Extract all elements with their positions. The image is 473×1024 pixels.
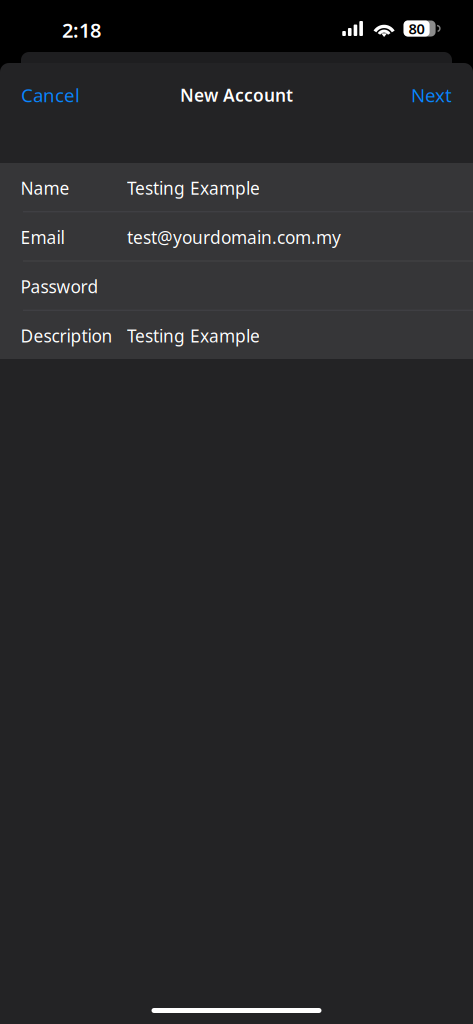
staticText: 80 [409,19,425,38]
staticText: Name [20,177,69,200]
button[interactable]: Email [0,212,473,260]
staticText: Description [20,324,112,347]
button[interactable]: Cancel [0,65,102,119]
button[interactable]: Password [0,261,473,310]
staticText: test@yourdomain.com.my [127,226,341,249]
staticText: Email [20,226,64,249]
button[interactable]: Description [0,311,473,359]
button[interactable]: Name [0,163,473,211]
staticText: Password [20,275,98,298]
staticText: Testing Example [127,177,260,200]
staticText: Next [411,83,452,107]
button[interactable]: Next [389,65,473,119]
staticText: Testing Example [127,324,260,347]
staticText: New Account [180,83,293,106]
staticText: 2:18 [62,17,101,43]
staticText: Cancel [21,83,80,107]
